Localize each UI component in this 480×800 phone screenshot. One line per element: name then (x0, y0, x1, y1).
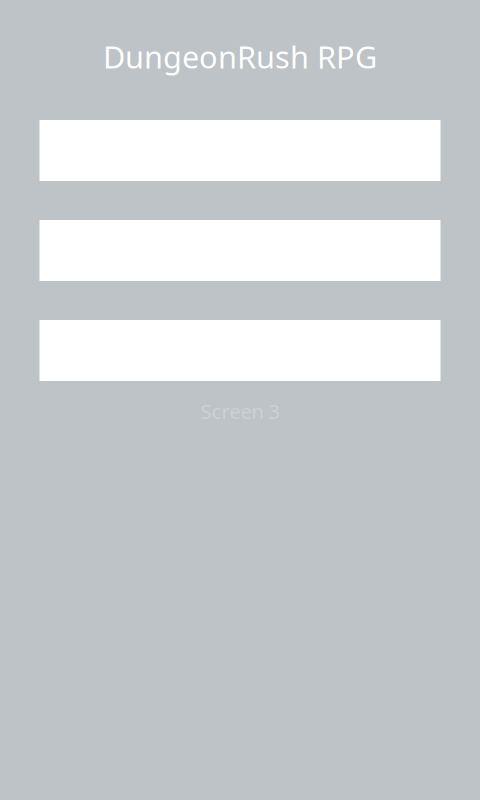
staticText: Screen 3 (200, 398, 279, 425)
staticText: DungeonRush RPG (103, 36, 377, 77)
